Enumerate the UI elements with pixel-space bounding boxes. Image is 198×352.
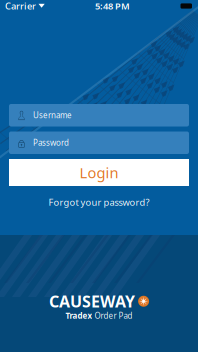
staticText: CAUSEWAY — [49, 291, 135, 312]
staticText: Tradex — [65, 310, 92, 321]
staticText: Login — [79, 163, 118, 182]
staticText: Password — [33, 137, 69, 148]
button[interactable]: Password — [9, 131, 189, 154]
button[interactable]: Username — [9, 104, 189, 126]
staticText: Order Pad — [95, 310, 133, 321]
button[interactable]: Login — [9, 159, 189, 186]
button[interactable]: Forgot your password? — [38, 192, 159, 212]
staticText: Forgot your password? — [48, 196, 149, 208]
staticText: Carrier — [5, 0, 36, 12]
staticText: Username — [33, 110, 72, 120]
staticText: 5:48 PM — [95, 0, 130, 12]
